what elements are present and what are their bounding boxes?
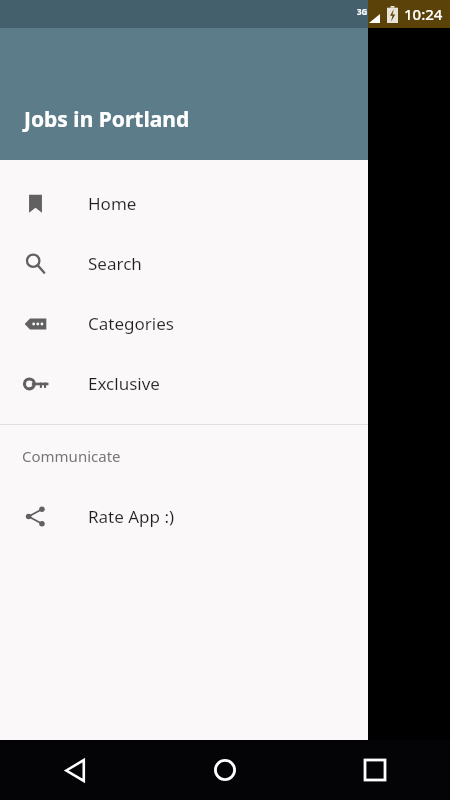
staticText: Exclusive: [88, 372, 160, 395]
staticText: 3G: [357, 6, 368, 17]
staticText: Categories: [88, 312, 174, 335]
button[interactable]: Recent apps: [300, 740, 450, 800]
button[interactable]: Welcome to Jobs in Portland,: [168, 120, 228, 615]
staticText: 10:24: [404, 4, 443, 24]
staticText: Communicate: [22, 446, 121, 466]
button[interactable]: Rate App :): [0, 486, 368, 546]
button[interactable]: Search: [0, 233, 368, 293]
staticText: Search: [88, 252, 142, 275]
button[interactable]: Jobs in Portland: [0, 28, 368, 160]
button[interactable]: Home: [0, 173, 368, 233]
staticText: Home: [88, 192, 137, 215]
button[interactable]: Home: [150, 740, 300, 800]
staticText: Rate App :): [88, 505, 175, 528]
button[interactable]: Categories: [0, 293, 368, 353]
staticText: Jobs in Portland: [24, 105, 190, 134]
button[interactable]: Exclusive: [0, 353, 368, 413]
button[interactable]: Back: [0, 740, 150, 800]
